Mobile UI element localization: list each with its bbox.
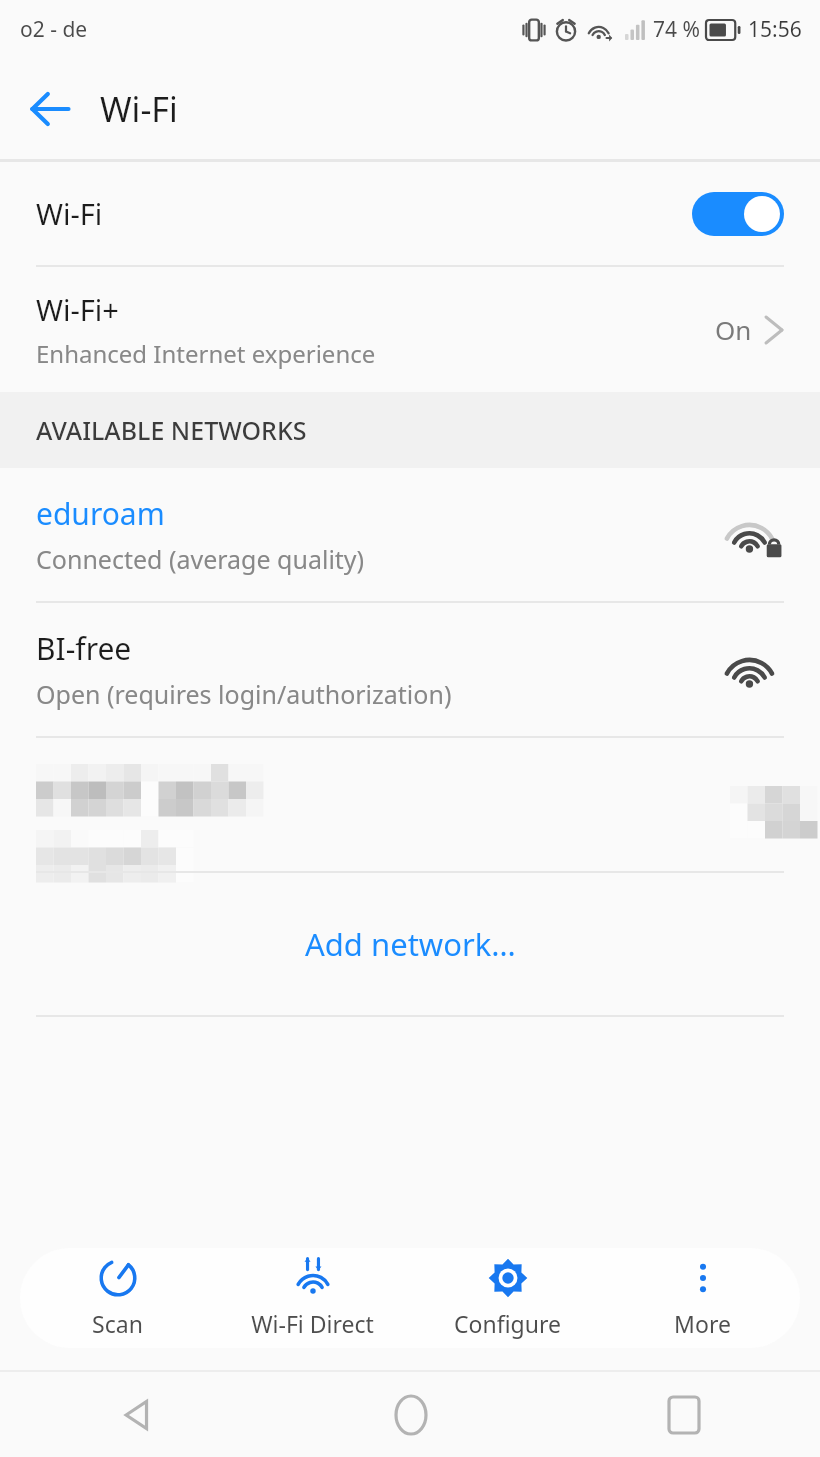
staticText: Wi-Fi+ bbox=[36, 290, 119, 329]
button[interactable]: Add network… bbox=[0, 873, 820, 1015]
staticText: Add network… bbox=[305, 923, 516, 965]
button[interactable]: Scan bbox=[20, 1248, 215, 1348]
staticText: Wi-Fi Direct bbox=[251, 1308, 374, 1339]
staticText: AVAILABLE NETWORKS bbox=[36, 413, 307, 447]
button[interactable]: Back bbox=[0, 1372, 274, 1457]
staticText: Wi-Fi bbox=[100, 86, 178, 132]
button[interactable]: eduroam bbox=[0, 468, 820, 601]
staticText: Open (requires login/authorization) bbox=[36, 677, 452, 711]
button[interactable]: Configure bbox=[410, 1248, 605, 1348]
staticText: On bbox=[715, 312, 752, 347]
staticText: Connected (average quality) bbox=[36, 542, 365, 576]
button[interactable] bbox=[0, 738, 820, 871]
staticText: eduroam bbox=[36, 493, 165, 534]
button[interactable]: Recents bbox=[547, 1372, 820, 1457]
staticText: 74 % bbox=[653, 15, 700, 44]
button[interactable]: Wi-Fi+ bbox=[0, 267, 820, 392]
button[interactable]: Back bbox=[14, 73, 86, 145]
staticText: Configure bbox=[454, 1308, 561, 1339]
staticText: Enhanced Internet experience bbox=[36, 337, 376, 370]
staticText: BI-free bbox=[36, 628, 132, 669]
staticText: More bbox=[674, 1308, 731, 1339]
staticText: Scan bbox=[92, 1308, 143, 1339]
button[interactable]: Home bbox=[274, 1372, 547, 1457]
staticText: 15:56 bbox=[748, 15, 802, 44]
button[interactable]: Wi-Fi Direct bbox=[215, 1248, 410, 1348]
staticText: Wi-Fi bbox=[36, 194, 692, 233]
button[interactable]: Wi-Fi bbox=[0, 162, 820, 265]
button[interactable]: Wi-Fi toggle bbox=[692, 192, 784, 236]
button[interactable]: BI-free bbox=[0, 603, 820, 736]
staticText: o2 - de bbox=[20, 15, 88, 44]
button[interactable]: More bbox=[605, 1248, 800, 1348]
